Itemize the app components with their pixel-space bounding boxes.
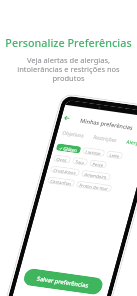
staticText: Leite	[106, 147, 123, 163]
button[interactable]: Ovos	[50, 147, 74, 171]
button[interactable]: Back	[60, 111, 74, 125]
button[interactable]: Crustáceos	[47, 153, 83, 189]
button[interactable]: Alergias	[121, 128, 137, 158]
button[interactable]: Lactose	[79, 137, 108, 167]
staticText: Minhas preferências	[77, 93, 137, 154]
button[interactable]: Glúten	[53, 133, 84, 164]
button[interactable]: Objetivos	[57, 118, 90, 151]
staticText: Peixe	[89, 156, 106, 173]
staticText: Veja alertas de alergias, intolerâncias …	[17, 55, 120, 84]
button[interactable]: Frutos do mar	[73, 165, 115, 207]
staticText: Salvar preferências	[33, 252, 93, 296]
staticText: Crustáceos	[50, 157, 79, 186]
staticText: Alergias	[123, 130, 137, 156]
button[interactable]: Leite	[103, 143, 126, 166]
staticText: Objetivos	[59, 120, 88, 149]
button[interactable]: Peixe	[86, 152, 110, 176]
staticText: Ovos	[53, 151, 71, 168]
button[interactable]: Soja	[69, 150, 91, 172]
staticText: Glúten	[60, 139, 81, 159]
button[interactable]: Castanhas	[44, 164, 78, 199]
staticText: Frutos do mar	[76, 169, 111, 204]
staticText: Castanhas	[47, 169, 74, 196]
staticText: Restrições	[90, 123, 121, 155]
button[interactable]: Amendoim	[78, 157, 114, 193]
button[interactable]: Restrições	[88, 121, 123, 157]
staticText: Amendoim	[81, 161, 110, 190]
staticText: Lactose	[82, 141, 105, 163]
staticText: Soja	[72, 154, 88, 169]
button[interactable]: Salvar preferências	[15, 234, 111, 296]
staticText: Personalize Preferências	[5, 35, 132, 50]
